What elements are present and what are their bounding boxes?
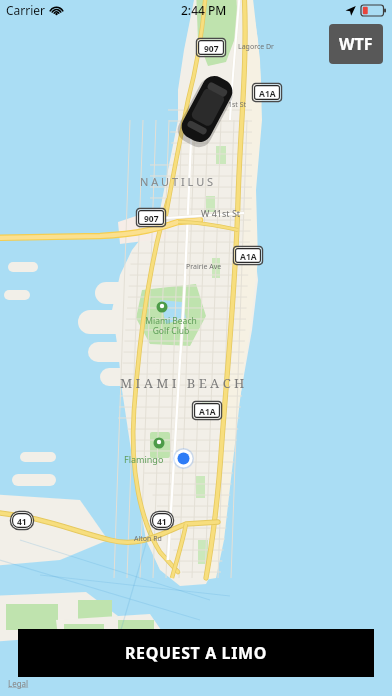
button[interactable]: WTF xyxy=(329,24,383,64)
staticText: 41 xyxy=(17,516,27,528)
staticText: 41 xyxy=(157,516,167,528)
staticText: 2:44 PM xyxy=(181,2,227,18)
staticText: Lagorce Dr xyxy=(238,42,275,52)
staticText: Flamingo xyxy=(124,453,164,465)
staticText: Alton Rd xyxy=(134,534,162,544)
staticText: A1A xyxy=(259,88,276,100)
staticText: WTF xyxy=(339,33,373,55)
staticText: Carrier xyxy=(6,2,46,18)
staticText: 907 xyxy=(204,43,219,55)
button[interactable]: Legal xyxy=(6,676,31,691)
button[interactable]: REQUEST A LIMO xyxy=(18,629,374,677)
staticText: Legal xyxy=(8,678,29,689)
staticText: Prairie Ave xyxy=(186,262,222,272)
staticText: A1A xyxy=(240,251,257,263)
staticText: M I A M I B E A C H xyxy=(120,374,245,392)
staticText: REQUEST A LIMO xyxy=(125,642,267,664)
staticText: W 41st St xyxy=(201,207,241,219)
staticText: 907 xyxy=(144,213,159,225)
staticText: N A U T I L U S xyxy=(140,174,214,189)
other: Your location xyxy=(173,448,194,469)
staticText: Miami Beach Golf Club xyxy=(145,315,197,336)
staticText: A1A xyxy=(199,406,216,418)
staticText: 1st St xyxy=(228,100,247,110)
